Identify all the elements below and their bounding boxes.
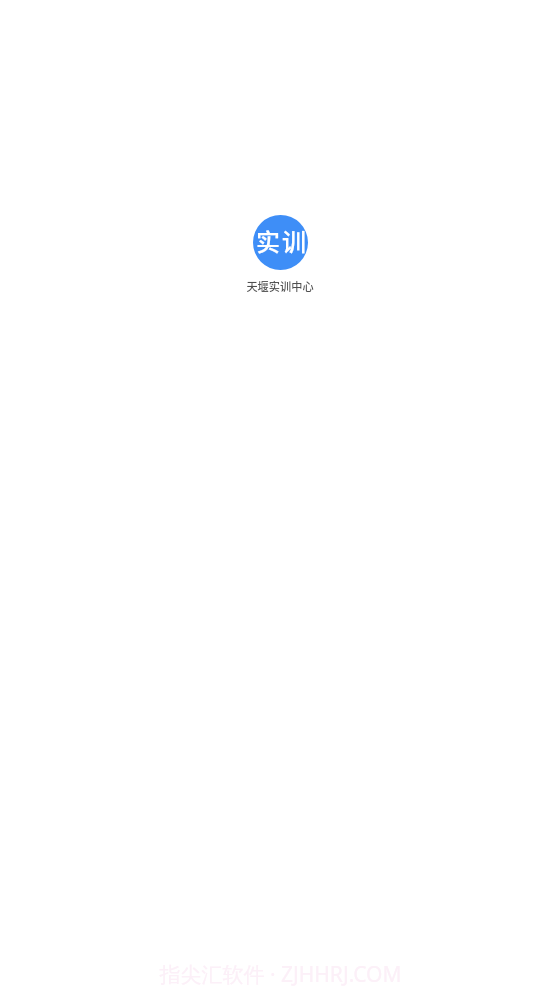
staticText: 训 <box>282 223 306 258</box>
button[interactable]: 天堰实训中心 logo <box>253 215 308 270</box>
staticText: 天堰实训中心 <box>246 278 314 294</box>
staticText: 实 <box>256 223 280 258</box>
staticText: 指尖汇软件 · ZJHHRJ.COM <box>159 960 402 989</box>
